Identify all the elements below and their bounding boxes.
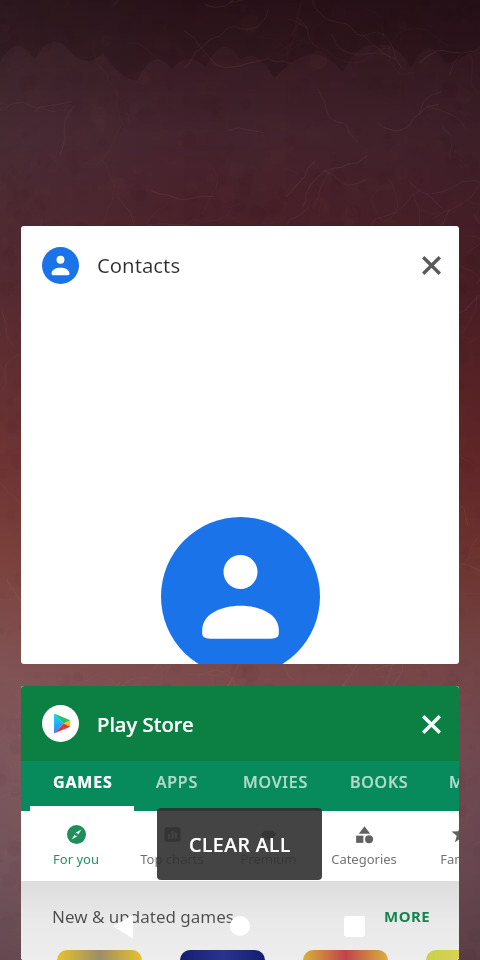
button[interactable]: M (449, 761, 459, 802)
staticText: MOVIES (243, 771, 309, 793)
button[interactable]: Recent apps (328, 900, 380, 952)
staticText: Top charts (140, 850, 204, 868)
staticText: Play Store (97, 710, 194, 738)
button[interactable]: Back (98, 900, 150, 952)
staticText: Categories (331, 850, 397, 868)
button[interactable]: Play Store (21, 686, 459, 960)
staticText: M (449, 771, 459, 793)
staticText: CLEAR ALL (189, 831, 291, 858)
staticText: BOOKS (350, 771, 409, 793)
button[interactable]: Home (214, 900, 266, 952)
button[interactable]: GAMES (53, 761, 113, 802)
button[interactable]: APPS (156, 761, 199, 802)
staticText: APPS (156, 771, 199, 793)
staticText: For you (53, 850, 99, 868)
staticText: New & updated games (52, 905, 234, 928)
button[interactable]: Premium (220, 811, 316, 881)
button[interactable]: Categories (316, 811, 412, 881)
staticText: Premium (240, 850, 297, 868)
staticText: Family (440, 850, 459, 868)
button[interactable]: Top charts (124, 811, 220, 881)
button[interactable]: MOVIES (243, 761, 309, 802)
button[interactable]: For you (28, 811, 124, 881)
button[interactable]: Family (412, 811, 459, 881)
button[interactable]: Close Play Store (409, 702, 453, 746)
button[interactable]: Close Contacts (409, 243, 453, 287)
button[interactable]: MORE (384, 906, 431, 926)
button[interactable]: CLEAR ALL (157, 808, 322, 880)
staticText: Contacts (97, 251, 181, 279)
button[interactable]: Contacts (21, 226, 459, 664)
staticText: GAMES (53, 771, 113, 793)
button[interactable]: BOOKS (350, 761, 409, 802)
